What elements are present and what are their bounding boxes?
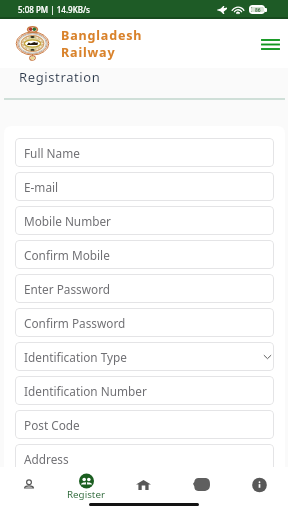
staticText: Full Name xyxy=(24,145,80,161)
staticText: Identification Type xyxy=(24,349,127,365)
button[interactable]: Info xyxy=(230,467,288,502)
button[interactable]: Menu xyxy=(255,29,285,59)
staticText: E-mail xyxy=(24,179,59,195)
button[interactable]: Confirm Mobile xyxy=(15,240,274,269)
staticText: Registration xyxy=(19,68,101,86)
staticText: Address xyxy=(24,451,69,467)
staticText: Bangladesh Railway xyxy=(61,27,143,61)
staticText: Confirm Password xyxy=(24,315,126,331)
button[interactable]: Identification Number xyxy=(15,376,274,405)
button[interactable]: Confirm Password xyxy=(15,308,274,337)
button[interactable]: Home xyxy=(114,467,172,502)
button[interactable]: Address xyxy=(15,444,274,467)
button[interactable]: Mobile Number xyxy=(15,206,274,235)
staticText: 5:08 PM | 14.9KB/s xyxy=(18,4,90,15)
staticText: Identification Number xyxy=(24,383,147,399)
button[interactable]: Full Name xyxy=(15,138,274,167)
button[interactable]: Identification Type xyxy=(15,342,274,371)
button[interactable]: Messages xyxy=(172,467,230,502)
button[interactable]: Profile xyxy=(0,467,57,502)
staticText: Register xyxy=(67,488,105,501)
button[interactable]: Post Code xyxy=(15,410,274,439)
staticText: Confirm Mobile xyxy=(24,247,110,263)
button[interactable]: Enter Password xyxy=(15,274,274,303)
staticText: 86 xyxy=(255,7,261,12)
button[interactable]: E-mail xyxy=(15,172,274,201)
staticText: Mobile Number xyxy=(24,213,111,229)
staticText: Post Code xyxy=(24,417,80,433)
button[interactable]: Register xyxy=(57,467,114,502)
staticText: Enter Password xyxy=(24,281,111,297)
